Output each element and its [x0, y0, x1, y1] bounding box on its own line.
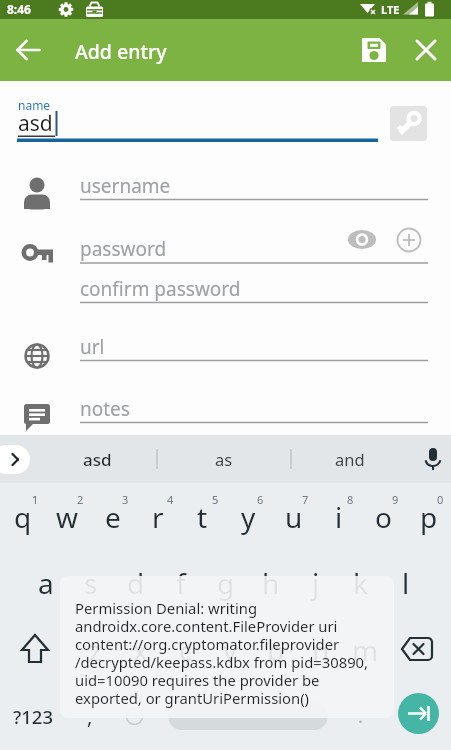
staticText: b	[267, 631, 285, 669]
button[interactable]: a	[23, 550, 68, 616]
button[interactable]: y	[226, 483, 271, 550]
staticText: t	[197, 498, 208, 536]
staticText: x	[133, 631, 148, 669]
button[interactable]	[0, 445, 30, 474]
staticText: notes	[80, 396, 130, 422]
staticText: f	[176, 564, 186, 602]
staticText: 8	[347, 492, 354, 507]
staticText: y	[241, 498, 256, 536]
staticText: c	[179, 631, 193, 669]
staticText: d	[127, 564, 145, 602]
staticText: name	[18, 97, 51, 113]
button[interactable]: as	[167, 435, 281, 483]
staticText: o	[375, 498, 392, 536]
button[interactable]: username	[80, 170, 428, 201]
staticText: 1	[32, 492, 39, 507]
staticText: 6	[257, 492, 264, 507]
staticText: 9	[392, 492, 399, 507]
staticText: 8:46	[7, 1, 31, 17]
button[interactable]: u	[271, 483, 316, 550]
staticText: LTE	[381, 2, 400, 17]
button[interactable]: r	[135, 483, 180, 550]
staticText: p	[420, 498, 438, 536]
staticText: ?123	[13, 704, 54, 729]
button[interactable]	[168, 702, 328, 730]
button[interactable]: k	[338, 550, 383, 616]
button[interactable]	[384, 616, 451, 683]
button[interactable]: notes	[80, 393, 428, 424]
button[interactable]: h	[248, 550, 293, 616]
staticText: z	[89, 631, 103, 669]
staticText: .	[358, 704, 363, 729]
button[interactable]: password	[80, 233, 360, 264]
staticText: v	[223, 631, 238, 669]
staticText: 0	[437, 492, 444, 507]
staticText: ,	[87, 703, 93, 730]
staticText: password	[80, 236, 167, 262]
staticText: 2	[77, 492, 84, 507]
button[interactable]: p	[406, 483, 451, 550]
button[interactable]	[8, 30, 48, 70]
staticText: 7	[302, 492, 309, 507]
button[interactable]: and	[295, 435, 405, 483]
button[interactable]: s	[68, 550, 113, 616]
button[interactable]: c	[163, 616, 208, 683]
staticText: username	[80, 173, 171, 199]
staticText: w	[56, 498, 79, 536]
button[interactable]: f	[158, 550, 203, 616]
staticText: k	[353, 564, 368, 602]
staticText: and	[335, 448, 365, 470]
button[interactable]: v	[208, 616, 253, 683]
staticText: url	[80, 334, 105, 360]
button[interactable]: z	[73, 616, 118, 683]
staticText: r	[152, 498, 164, 536]
button[interactable]: m	[343, 616, 388, 683]
staticText: asd	[18, 109, 53, 138]
button[interactable]: i	[316, 483, 361, 550]
button[interactable]	[406, 30, 446, 70]
staticText: confirm password	[80, 276, 241, 302]
button[interactable]: asd	[50, 435, 145, 483]
button[interactable]: t	[180, 483, 225, 550]
button[interactable]: ,	[67, 683, 112, 750]
button[interactable]	[390, 106, 427, 141]
button[interactable]: g	[203, 550, 248, 616]
button[interactable]: .	[338, 683, 383, 750]
staticText: asd	[83, 448, 112, 471]
staticText: a	[38, 564, 54, 602]
staticText: Permission Denial: writing androidx.core…	[75, 598, 369, 709]
button[interactable]: o	[361, 483, 406, 550]
button[interactable]: j	[293, 550, 338, 616]
button[interactable]: d	[113, 550, 158, 616]
staticText: j	[312, 564, 320, 602]
button[interactable]: e	[90, 483, 135, 550]
staticText: l	[402, 564, 410, 602]
staticText: 5	[212, 492, 219, 507]
button[interactable]: url	[80, 331, 428, 362]
staticText: u	[285, 498, 303, 536]
staticText: g	[217, 564, 235, 602]
button[interactable]	[0, 616, 67, 683]
button[interactable]: l	[383, 550, 428, 616]
staticText: 3	[122, 492, 129, 507]
button[interactable]: ?123	[0, 683, 67, 750]
button[interactable]	[398, 693, 439, 734]
button[interactable]	[355, 31, 393, 69]
staticText: h	[262, 564, 280, 602]
button[interactable]: n	[298, 616, 343, 683]
button[interactable]: b	[253, 616, 298, 683]
staticText: n	[312, 631, 330, 669]
staticText: i	[335, 498, 343, 536]
staticText: e	[105, 498, 121, 536]
staticText: m	[352, 631, 379, 669]
button[interactable]: x	[118, 616, 163, 683]
button[interactable]: q	[0, 483, 45, 550]
staticText: Add entry	[75, 38, 167, 65]
staticText: 4	[167, 492, 174, 507]
staticText: s	[84, 564, 98, 602]
staticText: q	[14, 498, 32, 536]
staticText: as	[215, 448, 233, 470]
button[interactable]: w	[45, 483, 90, 550]
button[interactable]: confirm password	[80, 273, 428, 304]
